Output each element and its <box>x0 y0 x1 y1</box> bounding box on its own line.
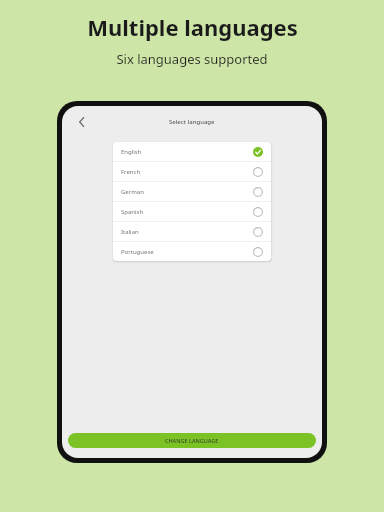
staticText: Portuguese <box>121 248 154 256</box>
staticText: Spanish <box>121 208 144 216</box>
staticText: German <box>121 188 144 196</box>
staticText: Select language <box>169 118 215 126</box>
button[interactable]: Spanish <box>113 202 271 221</box>
staticText: Six languages supported <box>116 50 268 68</box>
button[interactable]: French <box>113 162 271 181</box>
staticText: Italian <box>121 228 139 236</box>
staticText: CHANGE LANGUAGE <box>165 437 219 444</box>
button[interactable]: Italian <box>113 222 271 241</box>
staticText: Multiple languages <box>87 12 298 42</box>
staticText: French <box>121 168 141 176</box>
button[interactable]: Back <box>70 110 94 134</box>
button[interactable]: German <box>113 182 271 201</box>
button[interactable]: English <box>113 142 271 161</box>
button[interactable]: Portuguese <box>113 242 271 261</box>
button[interactable]: CHANGE LANGUAGE <box>68 433 316 448</box>
staticText: English <box>121 148 142 156</box>
